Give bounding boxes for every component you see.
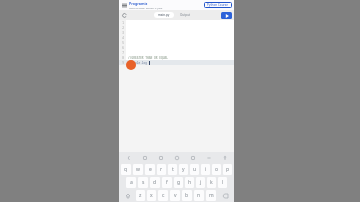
button[interactable]: l xyxy=(218,177,227,188)
button[interactable]: e xyxy=(145,164,155,175)
button[interactable]: v xyxy=(170,190,180,201)
button[interactable]: a xyxy=(126,177,136,188)
button[interactable]: w xyxy=(133,164,143,175)
button[interactable]: Menu xyxy=(121,2,128,9)
staticText: o xyxy=(215,166,219,173)
staticText: y xyxy=(182,166,185,173)
button[interactable]: GIF xyxy=(153,152,169,163)
button[interactable]: f xyxy=(162,177,172,188)
staticText: p xyxy=(226,166,230,173)
button[interactable]: Python Course xyxy=(204,2,232,8)
button[interactable]: j xyxy=(196,177,205,188)
staticText: Python Course xyxy=(207,3,229,7)
staticText: Learn to code. Python. C. Java. xyxy=(129,6,163,9)
staticText: r xyxy=(160,166,163,173)
button[interactable]: Voice xyxy=(217,152,233,163)
staticText: u xyxy=(193,166,197,173)
staticText: f xyxy=(166,179,168,186)
button[interactable]: y xyxy=(179,164,188,175)
staticText: 9 xyxy=(122,61,124,65)
staticText: i xyxy=(205,166,207,173)
staticText: t xyxy=(172,166,174,173)
staticText: //GREATER THAN OR EQUAL xyxy=(128,56,168,60)
staticText: 6 xyxy=(122,46,124,50)
button[interactable]: k xyxy=(207,177,216,188)
button[interactable]: main.py xyxy=(154,12,174,18)
button[interactable]: n xyxy=(194,190,204,201)
staticText: Programiz xyxy=(129,1,148,6)
staticText: l xyxy=(222,179,224,186)
staticText: z xyxy=(139,192,142,199)
staticText: h xyxy=(188,179,192,186)
button[interactable]: Backspace xyxy=(218,190,232,201)
staticText: x xyxy=(150,192,153,199)
button[interactable]: c xyxy=(158,190,168,201)
staticText: 8 xyxy=(122,56,124,60)
staticText: console.log xyxy=(128,61,148,65)
staticText: w xyxy=(136,166,140,173)
staticText: a xyxy=(130,179,133,186)
button[interactable]: o xyxy=(212,164,221,175)
staticText: j xyxy=(200,179,202,186)
button[interactable]: z xyxy=(136,190,145,201)
staticText: main.py xyxy=(158,13,170,17)
button[interactable]: Clipboard xyxy=(185,152,201,163)
button[interactable]: More xyxy=(201,152,217,163)
button[interactable]: Output xyxy=(177,12,194,18)
staticText: m xyxy=(209,192,214,199)
button[interactable]: g xyxy=(174,177,183,188)
button[interactable]: t xyxy=(168,164,177,175)
button[interactable]: i xyxy=(201,164,210,175)
staticText: g xyxy=(177,179,181,186)
staticText: v xyxy=(174,192,177,199)
button[interactable]: u xyxy=(190,164,199,175)
staticText: d xyxy=(153,179,157,186)
button[interactable]: p xyxy=(223,164,232,175)
button[interactable]: Run xyxy=(221,12,232,19)
button[interactable]: Shift xyxy=(121,190,134,201)
button[interactable]: Reset xyxy=(121,12,128,19)
button[interactable]: Sticker xyxy=(137,152,153,163)
button[interactable]: q xyxy=(121,164,131,175)
button[interactable]: r xyxy=(157,164,166,175)
button[interactable]: m xyxy=(206,190,216,201)
staticText: k xyxy=(210,179,213,186)
button[interactable]: b xyxy=(182,190,192,201)
staticText: b xyxy=(185,192,189,199)
staticText: Output xyxy=(180,13,191,17)
staticText: n xyxy=(197,192,201,199)
staticText: e xyxy=(149,166,152,173)
staticText: 7 xyxy=(122,51,124,55)
staticText: q xyxy=(124,166,128,173)
button[interactable]: x xyxy=(147,190,156,201)
staticText: c xyxy=(162,192,165,199)
button[interactable]: h xyxy=(185,177,194,188)
button[interactable]: s xyxy=(138,177,148,188)
button[interactable]: d xyxy=(150,177,160,188)
staticText: 2 xyxy=(122,26,124,30)
staticText: s xyxy=(142,179,145,186)
button[interactable]: Back xyxy=(120,152,137,163)
button[interactable]: Assistant xyxy=(126,60,136,70)
staticText: 3 xyxy=(122,31,124,35)
staticText: 5 xyxy=(122,41,124,45)
staticText: 4 xyxy=(122,36,124,40)
button[interactable]: Emoji xyxy=(169,152,185,163)
staticText: 1 xyxy=(122,21,124,25)
